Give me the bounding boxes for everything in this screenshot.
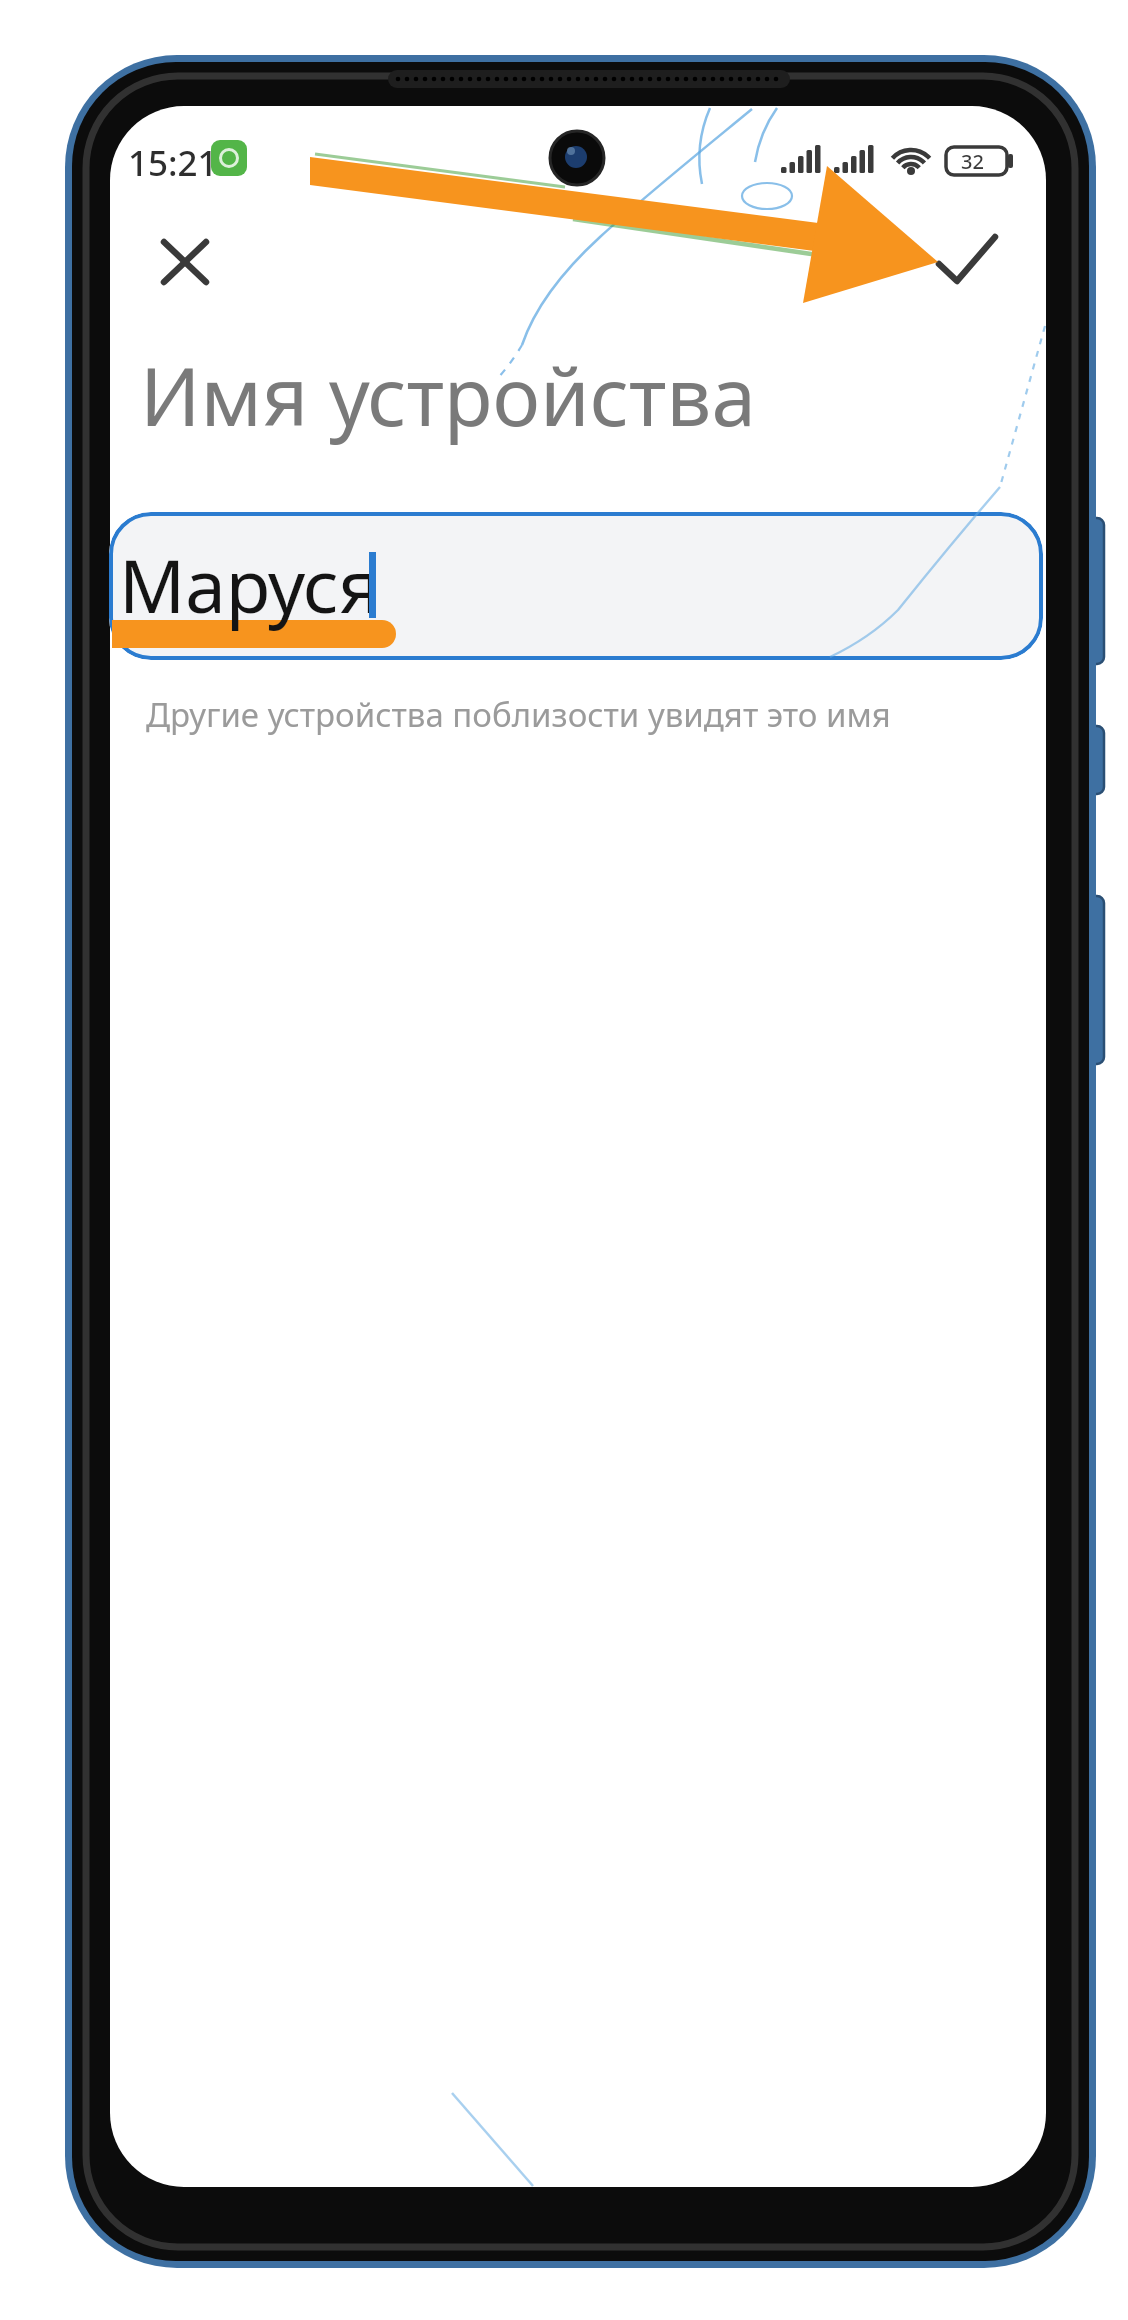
button[interactable] — [109, 512, 1043, 660]
staticText: 15:21 — [128, 139, 218, 187]
button[interactable] — [150, 227, 220, 297]
staticText: Маруся — [119, 535, 381, 634]
button[interactable] — [926, 222, 1006, 302]
staticText: Имя устройства — [140, 340, 756, 449]
staticText: 32 — [961, 148, 984, 175]
staticText: Другие устройства поблизости увидят это … — [146, 692, 891, 737]
